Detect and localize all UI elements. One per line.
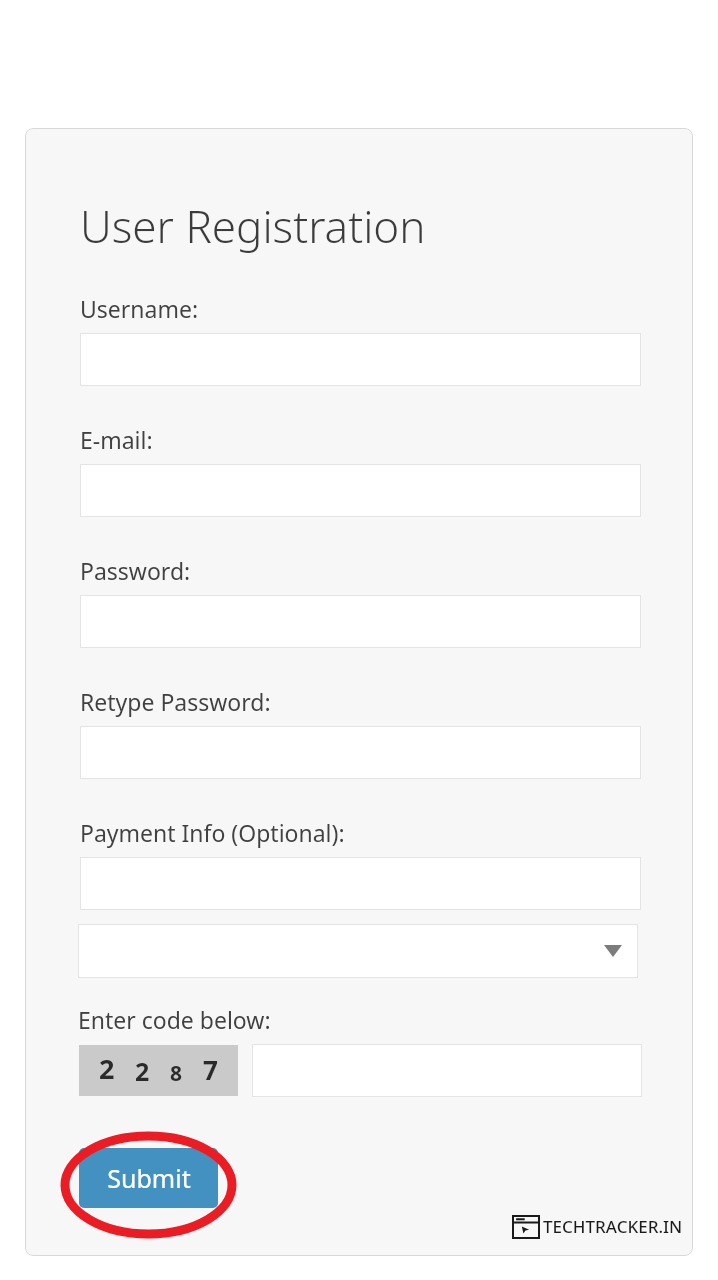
staticText: User Registration [80,196,426,256]
button[interactable]: Username input [80,333,641,386]
staticText: Payment Info (Optional): [80,817,345,848]
button[interactable]: Submit [79,1148,218,1208]
staticText: E-mail: [80,424,153,455]
button[interactable]: Password input [80,595,641,648]
button[interactable]: E-mail input [80,464,641,517]
button[interactable]: Payment info input [80,857,641,910]
staticText: 2 [99,1050,115,1087]
button[interactable]: Retype password input [80,726,641,779]
staticText: 8 [170,1059,183,1088]
staticText: Retype Password: [80,686,271,717]
staticText: 7 [203,1052,218,1087]
button[interactable]: Payment type dropdown [78,924,638,978]
button[interactable]: Captcha code input [252,1044,642,1097]
staticText: Username: [80,293,199,324]
staticText: 2 [135,1054,150,1088]
staticText: Submit [107,1161,191,1195]
staticText: Password: [80,555,191,586]
staticText: Enter code below: [78,1004,271,1035]
staticText: TECHTRACKER.IN [543,1215,683,1238]
